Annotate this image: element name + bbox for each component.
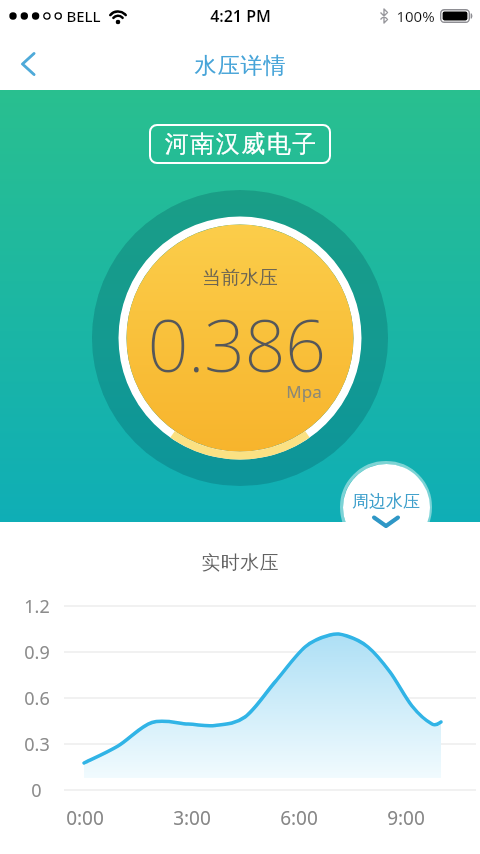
staticText: 水压详情 — [194, 52, 286, 80]
staticText: 当前水压 — [202, 266, 278, 290]
button[interactable]: 河南汉威电子 — [149, 124, 331, 164]
staticText: 0:00 — [66, 805, 104, 831]
staticText: 0.9 — [24, 640, 50, 665]
staticText: 实时水压 — [201, 551, 279, 575]
staticText: 河南汉威电子 — [164, 129, 317, 159]
staticText: 9:00 — [387, 805, 425, 831]
button[interactable]: 周边水压 — [340, 461, 432, 553]
staticText: 0.3 — [24, 732, 50, 757]
staticText: 0.386 — [147, 295, 326, 393]
button[interactable] — [0, 32, 56, 90]
staticText: 6:00 — [280, 805, 318, 831]
staticText: 0 — [31, 778, 42, 803]
staticText: 周边水压 — [352, 491, 420, 512]
staticText: 1.2 — [24, 594, 50, 619]
staticText: 100% — [396, 6, 435, 26]
staticText: Mpa — [286, 380, 322, 403]
staticText: 3:00 — [173, 805, 211, 831]
staticText: BELL — [66, 6, 101, 26]
staticText: 4:21 PM — [210, 5, 271, 27]
staticText: 0.6 — [24, 686, 50, 711]
